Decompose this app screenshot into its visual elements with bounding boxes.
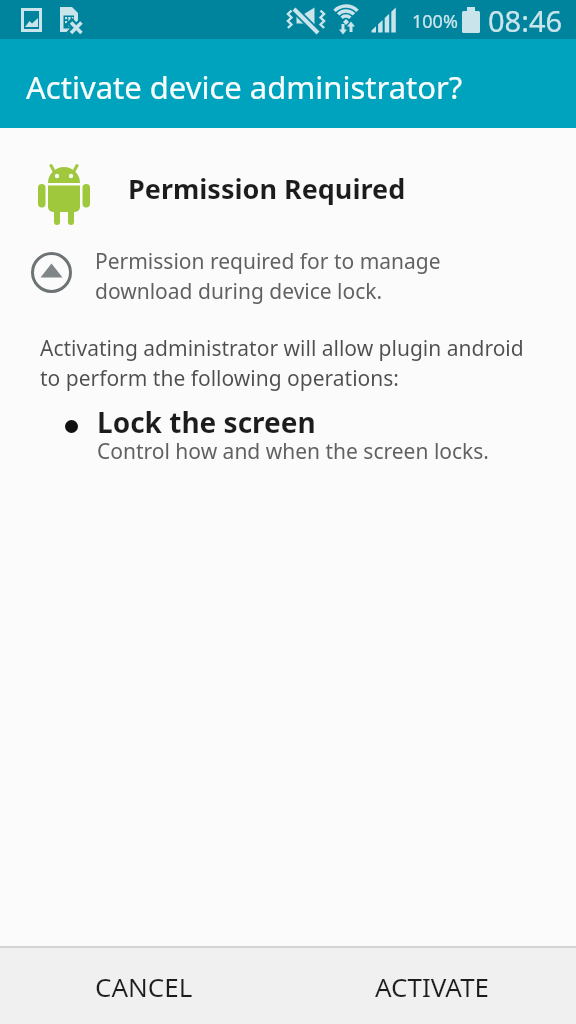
staticText: Permission required for to manage downlo… — [95, 247, 441, 305]
staticText: Permission Required — [128, 170, 406, 207]
button[interactable]: ACTIVATE — [288, 948, 576, 1024]
staticText: 100% — [412, 9, 458, 34]
button[interactable]: CANCEL — [0, 948, 288, 1024]
staticText: CANCEL — [95, 969, 193, 1004]
staticText: Control how and when the screen locks. — [97, 437, 489, 466]
staticText: ACTIVATE — [375, 969, 490, 1004]
staticText: Activating administrator will allow plug… — [40, 334, 524, 392]
staticText: Lock the screen — [97, 403, 316, 441]
staticText: Activate device administrator? — [26, 66, 463, 108]
staticText: 08:46 — [488, 1, 563, 40]
